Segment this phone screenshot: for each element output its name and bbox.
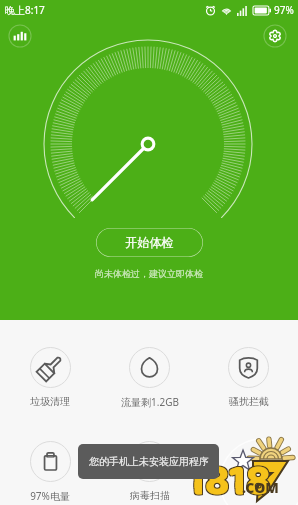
staticText: 垃圾清理 xyxy=(30,395,70,408)
staticText: 骚扰拦截 xyxy=(229,395,269,408)
staticText: 1818 xyxy=(189,447,271,505)
staticText: 97% xyxy=(274,3,294,17)
staticText: 病毒扫描 xyxy=(130,489,170,502)
staticText: 开始体检 xyxy=(125,235,174,250)
staticText: 您的手机上未安装应用程序 xyxy=(89,455,209,468)
staticText: 尚未体检过，建议立即体检 xyxy=(95,268,203,279)
button[interactable]: 流量剩1.2GB xyxy=(100,320,199,414)
button[interactable]: Statistics xyxy=(4,20,36,52)
staticText: 97%电量 xyxy=(30,489,70,503)
button[interactable]: 病毒扫描 xyxy=(100,414,199,505)
button[interactable]: 97%电量 xyxy=(0,414,100,505)
staticText: 1818 xyxy=(187,447,269,505)
button[interactable]: 开始体检 xyxy=(96,228,203,257)
button[interactable]: 垃圾清理 xyxy=(0,320,100,414)
staticText: 流量剩1.2GB xyxy=(121,395,179,409)
staticText: 1818 xyxy=(188,448,270,505)
staticText: .COM xyxy=(242,478,279,497)
button[interactable]: Settings xyxy=(259,20,291,52)
staticText: 1818 xyxy=(187,449,269,505)
staticText: 1818 xyxy=(189,449,271,505)
staticText: 晚上8:17 xyxy=(5,3,45,17)
button[interactable]: 骚扰拦截 xyxy=(199,320,298,414)
